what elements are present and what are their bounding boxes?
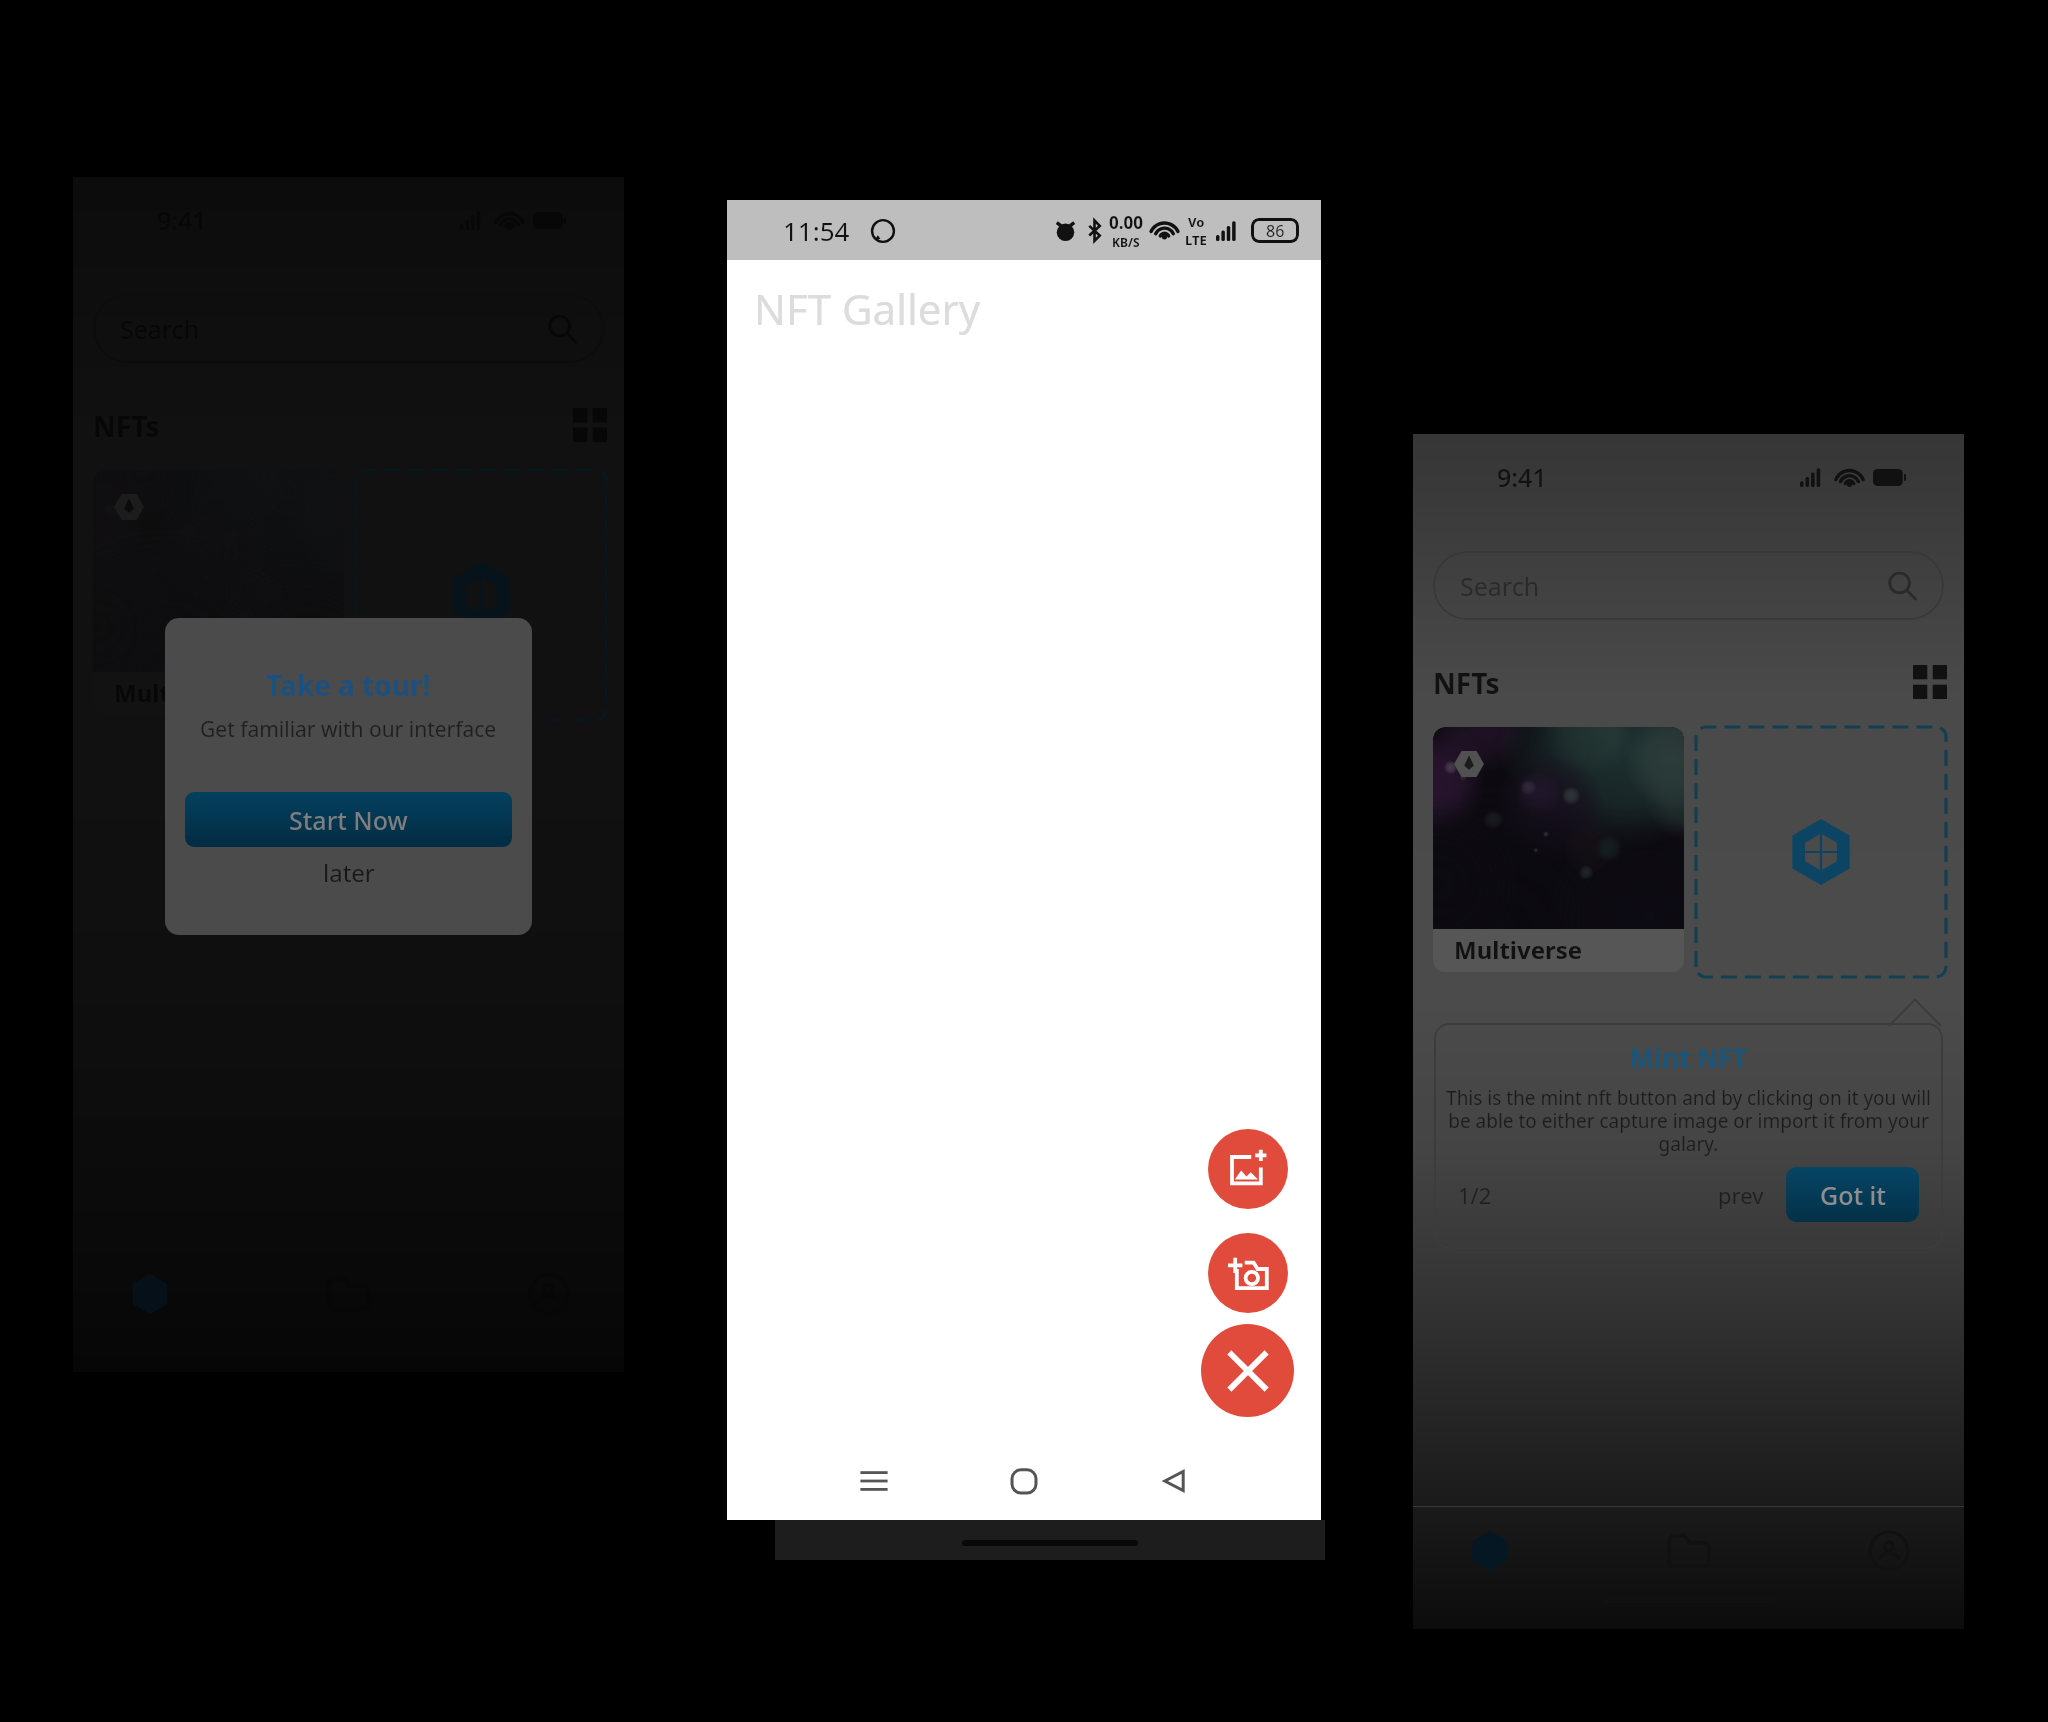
button[interactable]: Search [1433, 551, 1944, 620]
staticText: LTE [1185, 231, 1207, 249]
button[interactable]: prev [1708, 1172, 1774, 1218]
staticText: 86 [1266, 220, 1285, 242]
button[interactable]: Grid view [570, 407, 610, 443]
button[interactable]: Add NFT [1696, 727, 1946, 977]
button[interactable]: later [309, 851, 389, 894]
button[interactable]: Multiverse [1433, 727, 1684, 972]
staticText: Get familiar with our interface [200, 715, 497, 744]
staticText: Mint NFT [1434, 1040, 1943, 1075]
staticText: 1/2 [1458, 1180, 1492, 1210]
staticText: Multiverse [114, 676, 243, 709]
button[interactable]: Home [116, 1260, 184, 1328]
button[interactable]: Multiverse [93, 470, 344, 715]
staticText: KB/S [1112, 234, 1140, 250]
button[interactable]: Home [949, 1443, 1099, 1519]
staticText: Search [1460, 569, 1540, 603]
staticText: prev [1718, 1180, 1764, 1210]
staticText: NFTs [1433, 664, 1500, 700]
staticText: Got it [1820, 1178, 1886, 1212]
staticText: 9:41 [1497, 460, 1547, 494]
staticText: NFTs [93, 407, 160, 443]
staticText: later [323, 856, 375, 889]
staticText: This is the mint nft button and by click… [1442, 1085, 1935, 1157]
button[interactable]: Back [1099, 1443, 1249, 1519]
staticText: Start Now [289, 803, 408, 837]
button[interactable]: Add NFT [356, 470, 606, 720]
button[interactable]: Grid view [1910, 664, 1950, 700]
staticText: 11:54 [783, 213, 850, 248]
staticText: 0.00 [1109, 211, 1143, 234]
button[interactable]: Close [1201, 1324, 1294, 1417]
staticText: NFT Gallery [754, 280, 981, 337]
button[interactable]: Got it [1786, 1167, 1919, 1222]
button[interactable]: Recents [799, 1443, 949, 1519]
staticText: Multiverse [1454, 933, 1583, 966]
button[interactable]: Start Now [185, 792, 512, 847]
button[interactable]: Home [1456, 1517, 1524, 1585]
staticText: Take a tour! [266, 666, 431, 704]
button[interactable]: Add from gallery [1208, 1129, 1288, 1209]
staticText: Vo [1188, 213, 1205, 231]
button[interactable]: Capture photo [1208, 1233, 1288, 1313]
